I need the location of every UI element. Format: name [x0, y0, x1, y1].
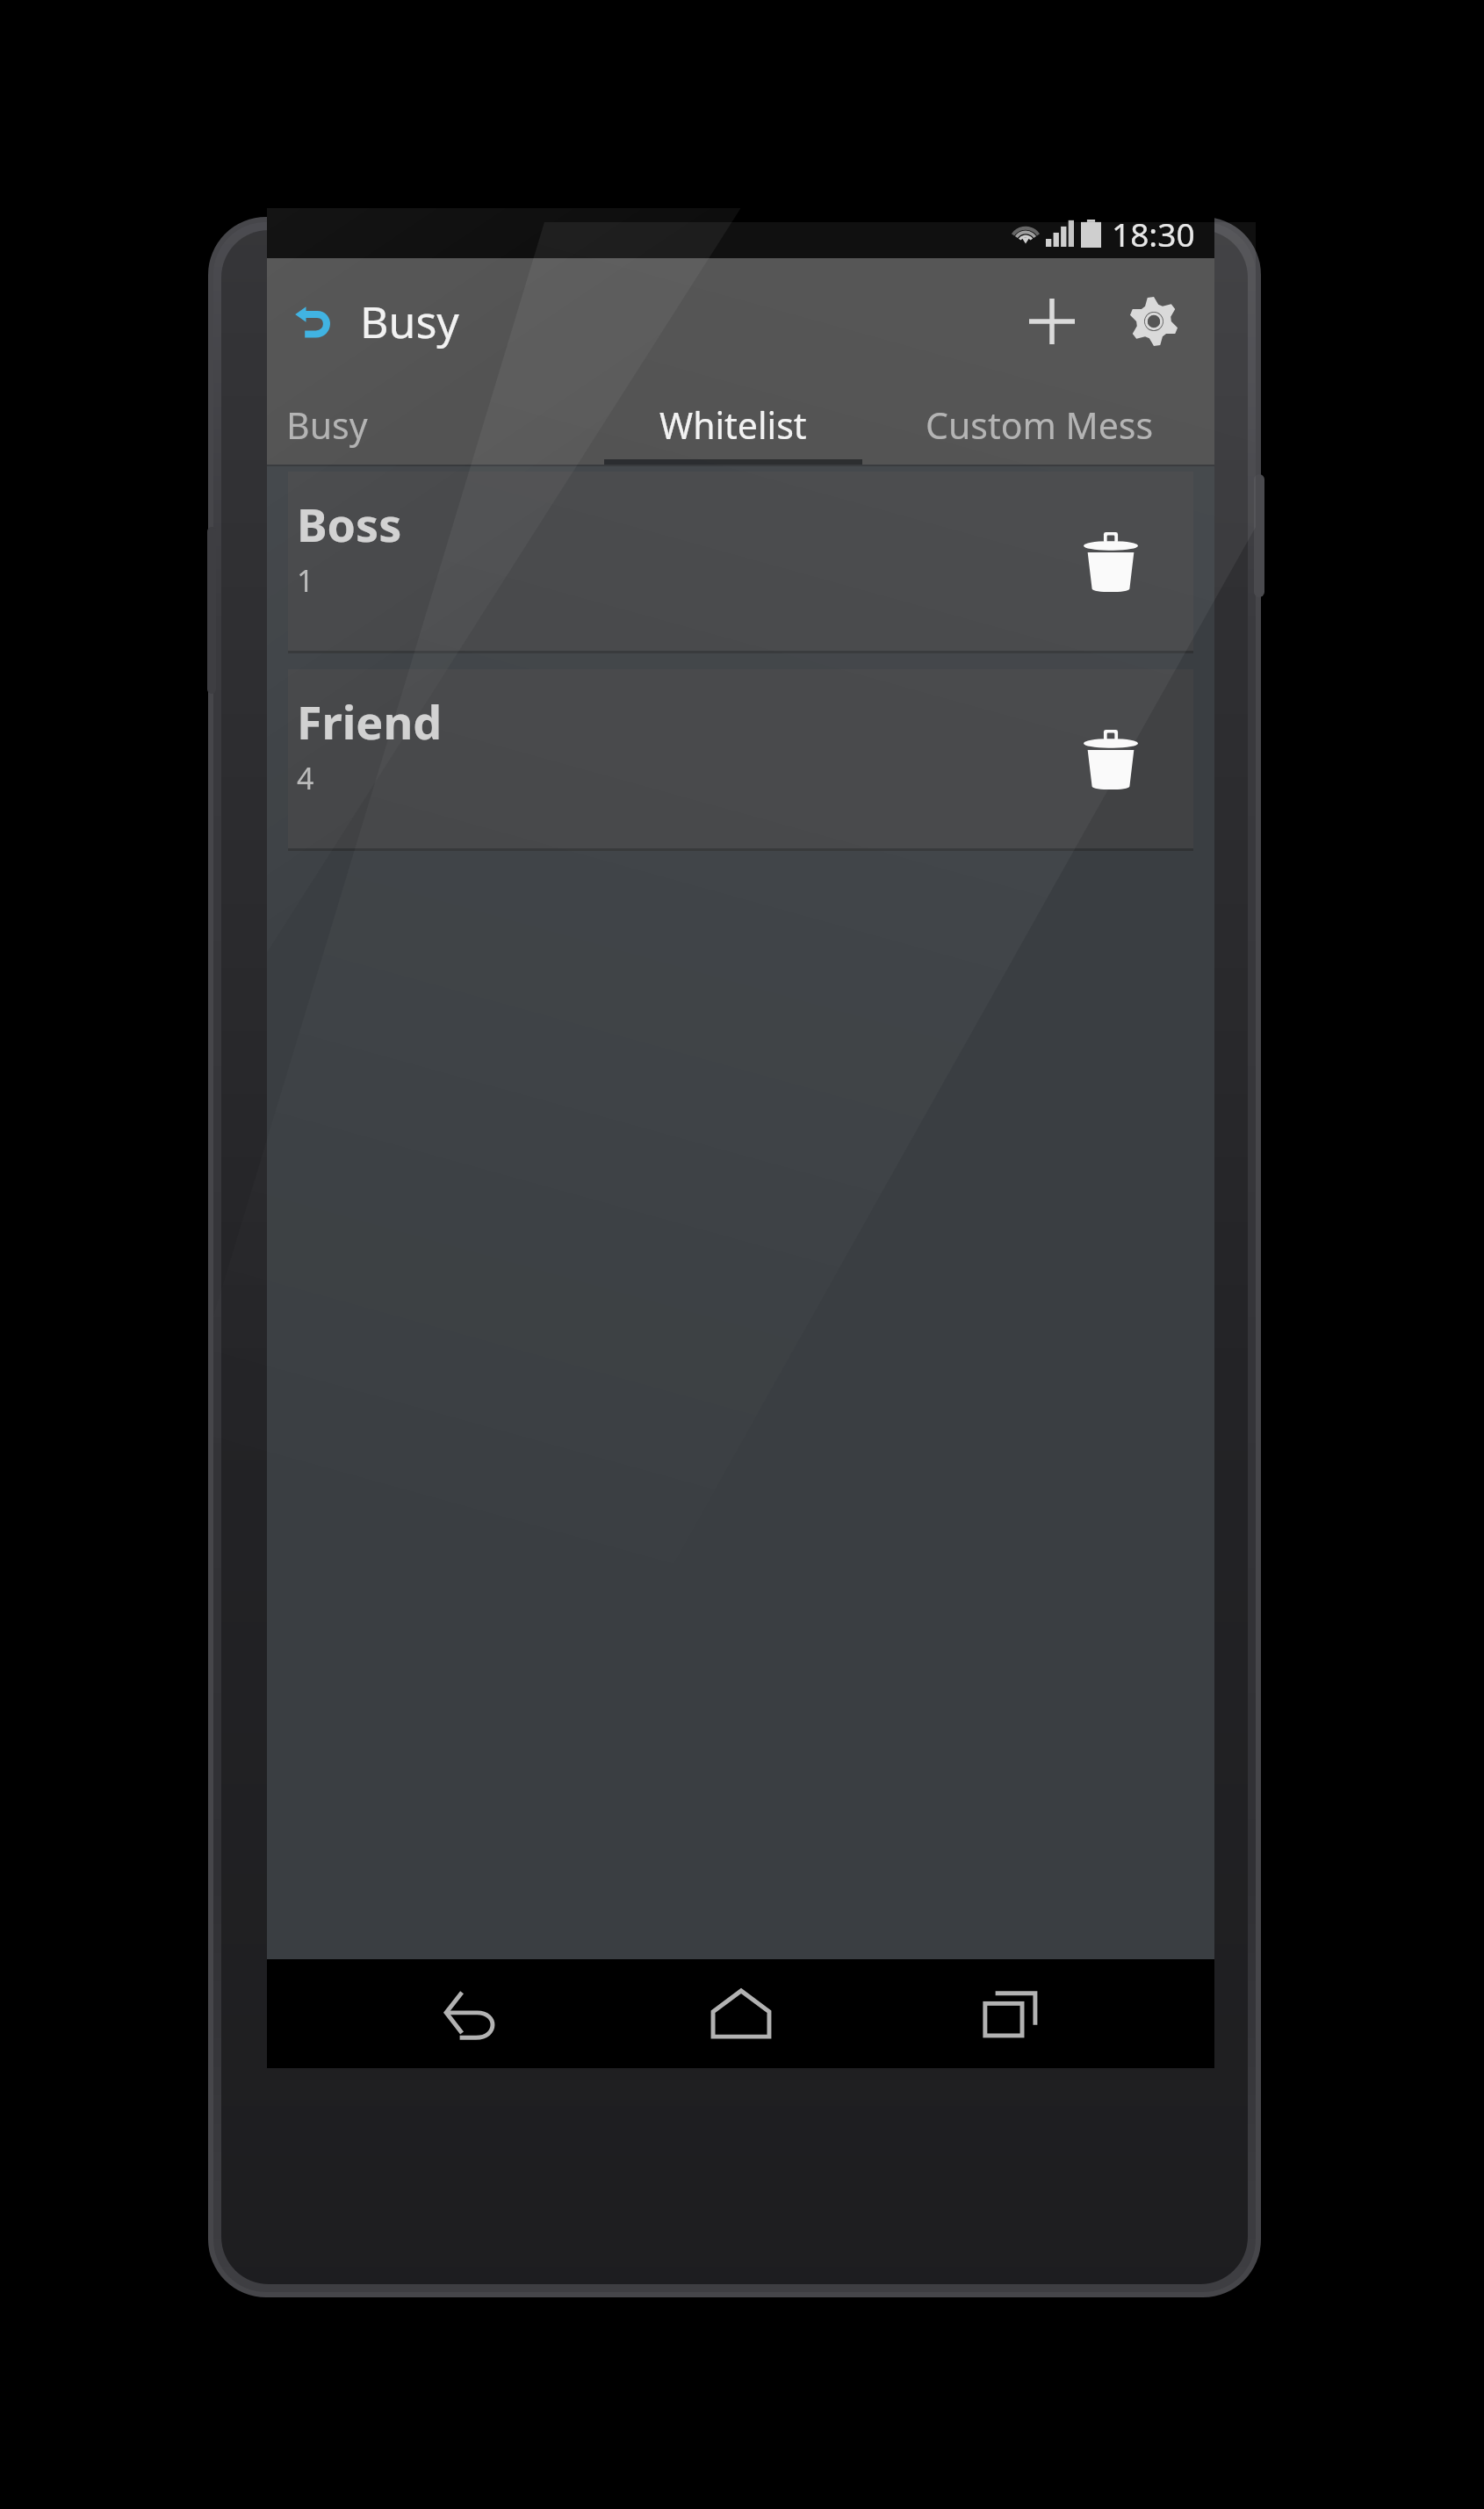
button[interactable]: Add [1001, 258, 1102, 384]
button[interactable]: Whitelist [578, 384, 889, 466]
staticText: 18:30 [1112, 212, 1195, 256]
staticText: Busy [286, 400, 368, 450]
button[interactable]: Home [675, 1959, 807, 2068]
staticText: Busy [360, 292, 459, 351]
staticText: 4 [297, 758, 314, 798]
button[interactable]: Back [405, 1959, 537, 2068]
button[interactable]: Busy [267, 258, 475, 384]
button[interactable]: Custom Mess [889, 384, 1214, 466]
staticText: Custom Mess [926, 400, 1154, 450]
staticText: Boss [297, 493, 402, 555]
button[interactable]: Delete Friend [1067, 717, 1155, 804]
button[interactable]: Settings [1102, 258, 1206, 384]
button[interactable]: Friend [288, 669, 1193, 851]
button[interactable]: Boss [288, 472, 1193, 653]
button[interactable]: Recent apps [945, 1959, 1077, 2068]
staticText: Whitelist [659, 400, 807, 450]
button[interactable]: Busy [267, 384, 578, 466]
staticText: Friend [297, 690, 443, 753]
staticText: 1 [297, 560, 314, 601]
button[interactable]: Delete Boss [1067, 519, 1155, 607]
